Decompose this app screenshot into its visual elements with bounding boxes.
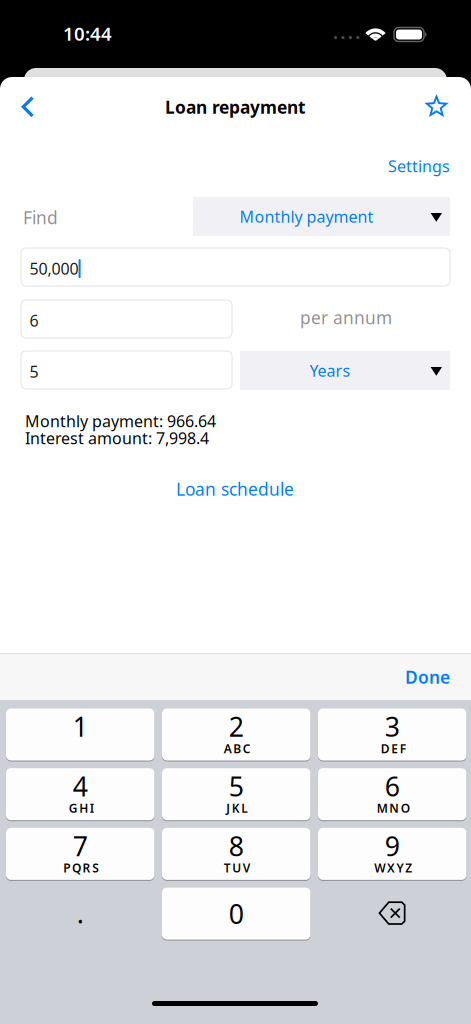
button[interactable]: Years [240, 351, 450, 390]
staticText: 9 [385, 828, 400, 864]
button[interactable]: 6 [318, 768, 466, 821]
button[interactable]: Delete [342, 887, 442, 939]
button[interactable]: 0 [162, 887, 310, 940]
staticText: 6 [385, 768, 400, 804]
staticText: Monthly payment [239, 206, 373, 227]
staticText: WXYZ [374, 860, 412, 876]
staticText: Monthly payment: 966.64 [25, 410, 216, 432]
staticText: ABC [224, 740, 251, 756]
staticText: Loan repayment [165, 95, 306, 118]
staticText: Years [309, 360, 350, 381]
staticText: 2 [229, 709, 244, 744]
button[interactable]: 4 [6, 768, 154, 821]
staticText: . [77, 895, 84, 931]
staticText: PQRS [63, 860, 99, 876]
staticText: JKL [226, 800, 248, 816]
staticText: 6 [30, 310, 39, 331]
staticText: 3 [385, 709, 400, 744]
staticText: Settings [388, 155, 450, 177]
staticText: Find [23, 206, 58, 229]
staticText: Done [405, 665, 450, 688]
button[interactable]: 1 [6, 708, 154, 761]
staticText: 8 [229, 828, 244, 864]
button[interactable]: Back [6, 85, 50, 129]
button[interactable]: Monthly payment [193, 197, 450, 236]
staticText: 10:44 [63, 21, 112, 46]
staticText: 5 [30, 361, 39, 382]
staticText: Loan schedule [176, 477, 294, 500]
staticText: 7 [73, 828, 88, 864]
button[interactable]: 8 [162, 827, 310, 880]
button[interactable]: Done [360, 654, 450, 700]
button[interactable]: 2 [162, 708, 310, 761]
staticText: 50,000 [30, 258, 79, 279]
staticText: 1 [73, 709, 88, 744]
button[interactable]: 7 [6, 827, 154, 880]
staticText: 4 [73, 768, 88, 804]
staticText: per annum [300, 306, 392, 329]
button[interactable]: 9 [318, 827, 466, 880]
staticText: MNO [377, 800, 410, 816]
staticText: GHI [69, 800, 94, 816]
button[interactable]: 5 [162, 768, 310, 821]
button[interactable]: . [6, 887, 154, 939]
button[interactable]: Favorite [415, 85, 459, 129]
button[interactable]: Loan schedule [135, 472, 335, 506]
button[interactable]: 3 [318, 708, 466, 761]
button[interactable]: Settings [360, 151, 450, 181]
staticText: 5 [229, 768, 244, 804]
staticText: Interest amount: 7,998.4 [25, 427, 209, 449]
staticText: DEF [381, 740, 406, 756]
staticText: 0 [229, 896, 244, 931]
staticText: TUV [224, 860, 251, 876]
